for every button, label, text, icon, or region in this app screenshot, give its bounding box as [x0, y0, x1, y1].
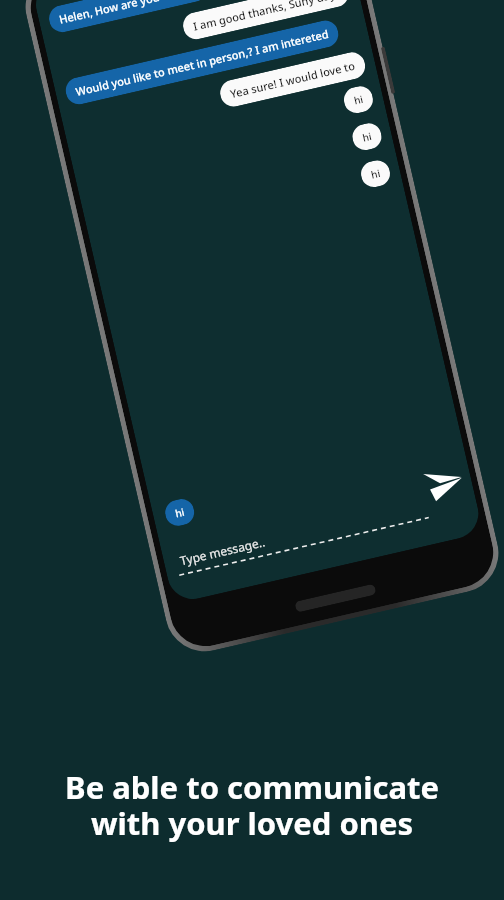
- staticText: hi: [361, 129, 373, 145]
- button[interactable]: hi: [358, 158, 393, 190]
- staticText: Helen, How are you doing?: [57, 0, 198, 27]
- button[interactable]: Send message: [417, 456, 470, 509]
- staticText: hi: [174, 505, 186, 520]
- staticText: Be able to communicate with your loved o…: [65, 766, 439, 844]
- staticText: Would you like to meet in person,? I am …: [74, 26, 330, 99]
- button[interactable]: hi: [341, 84, 375, 116]
- button[interactable]: I am good thanks, Suny day!: [180, 0, 351, 42]
- button[interactable]: hi: [350, 121, 384, 153]
- button[interactable]: Helen, How are you doing?: [46, 0, 209, 35]
- staticText: hi: [352, 92, 364, 108]
- staticText: Type message..: [178, 533, 267, 568]
- button[interactable]: Would you like to meet in person,? I am …: [63, 18, 341, 107]
- staticText: I am good thanks, Suny day!: [191, 0, 340, 34]
- staticText: Yea sure! I would love to: [229, 58, 357, 101]
- button[interactable]: Yea sure! I would love to: [217, 50, 368, 109]
- button[interactable]: hi: [163, 496, 197, 528]
- staticText: hi: [369, 166, 381, 182]
